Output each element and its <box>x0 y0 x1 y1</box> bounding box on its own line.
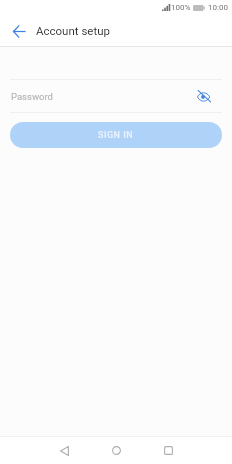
button[interactable]: Recents <box>153 437 183 464</box>
staticText: 100% <box>171 3 191 12</box>
staticText: Password <box>11 91 193 102</box>
button[interactable]: Back <box>5 17 32 44</box>
button[interactable]: SIGN IN <box>10 122 222 148</box>
staticText: 10:00 <box>208 3 228 12</box>
staticText: SIGN IN <box>98 130 134 141</box>
button[interactable]: Back <box>49 437 79 464</box>
button[interactable]: Show password <box>193 85 215 107</box>
button[interactable]: Home <box>101 437 131 464</box>
staticText: Account setup <box>36 24 110 37</box>
